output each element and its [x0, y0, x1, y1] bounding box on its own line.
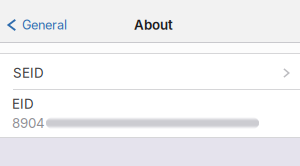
staticText: 8904	[12, 115, 45, 131]
button[interactable]: General	[0, 7, 77, 43]
staticText: SEID	[13, 65, 44, 81]
staticText: About	[134, 17, 173, 33]
button[interactable]: SEID	[0, 54, 300, 89]
staticText: EID	[12, 96, 34, 112]
staticText: General	[22, 17, 67, 33]
